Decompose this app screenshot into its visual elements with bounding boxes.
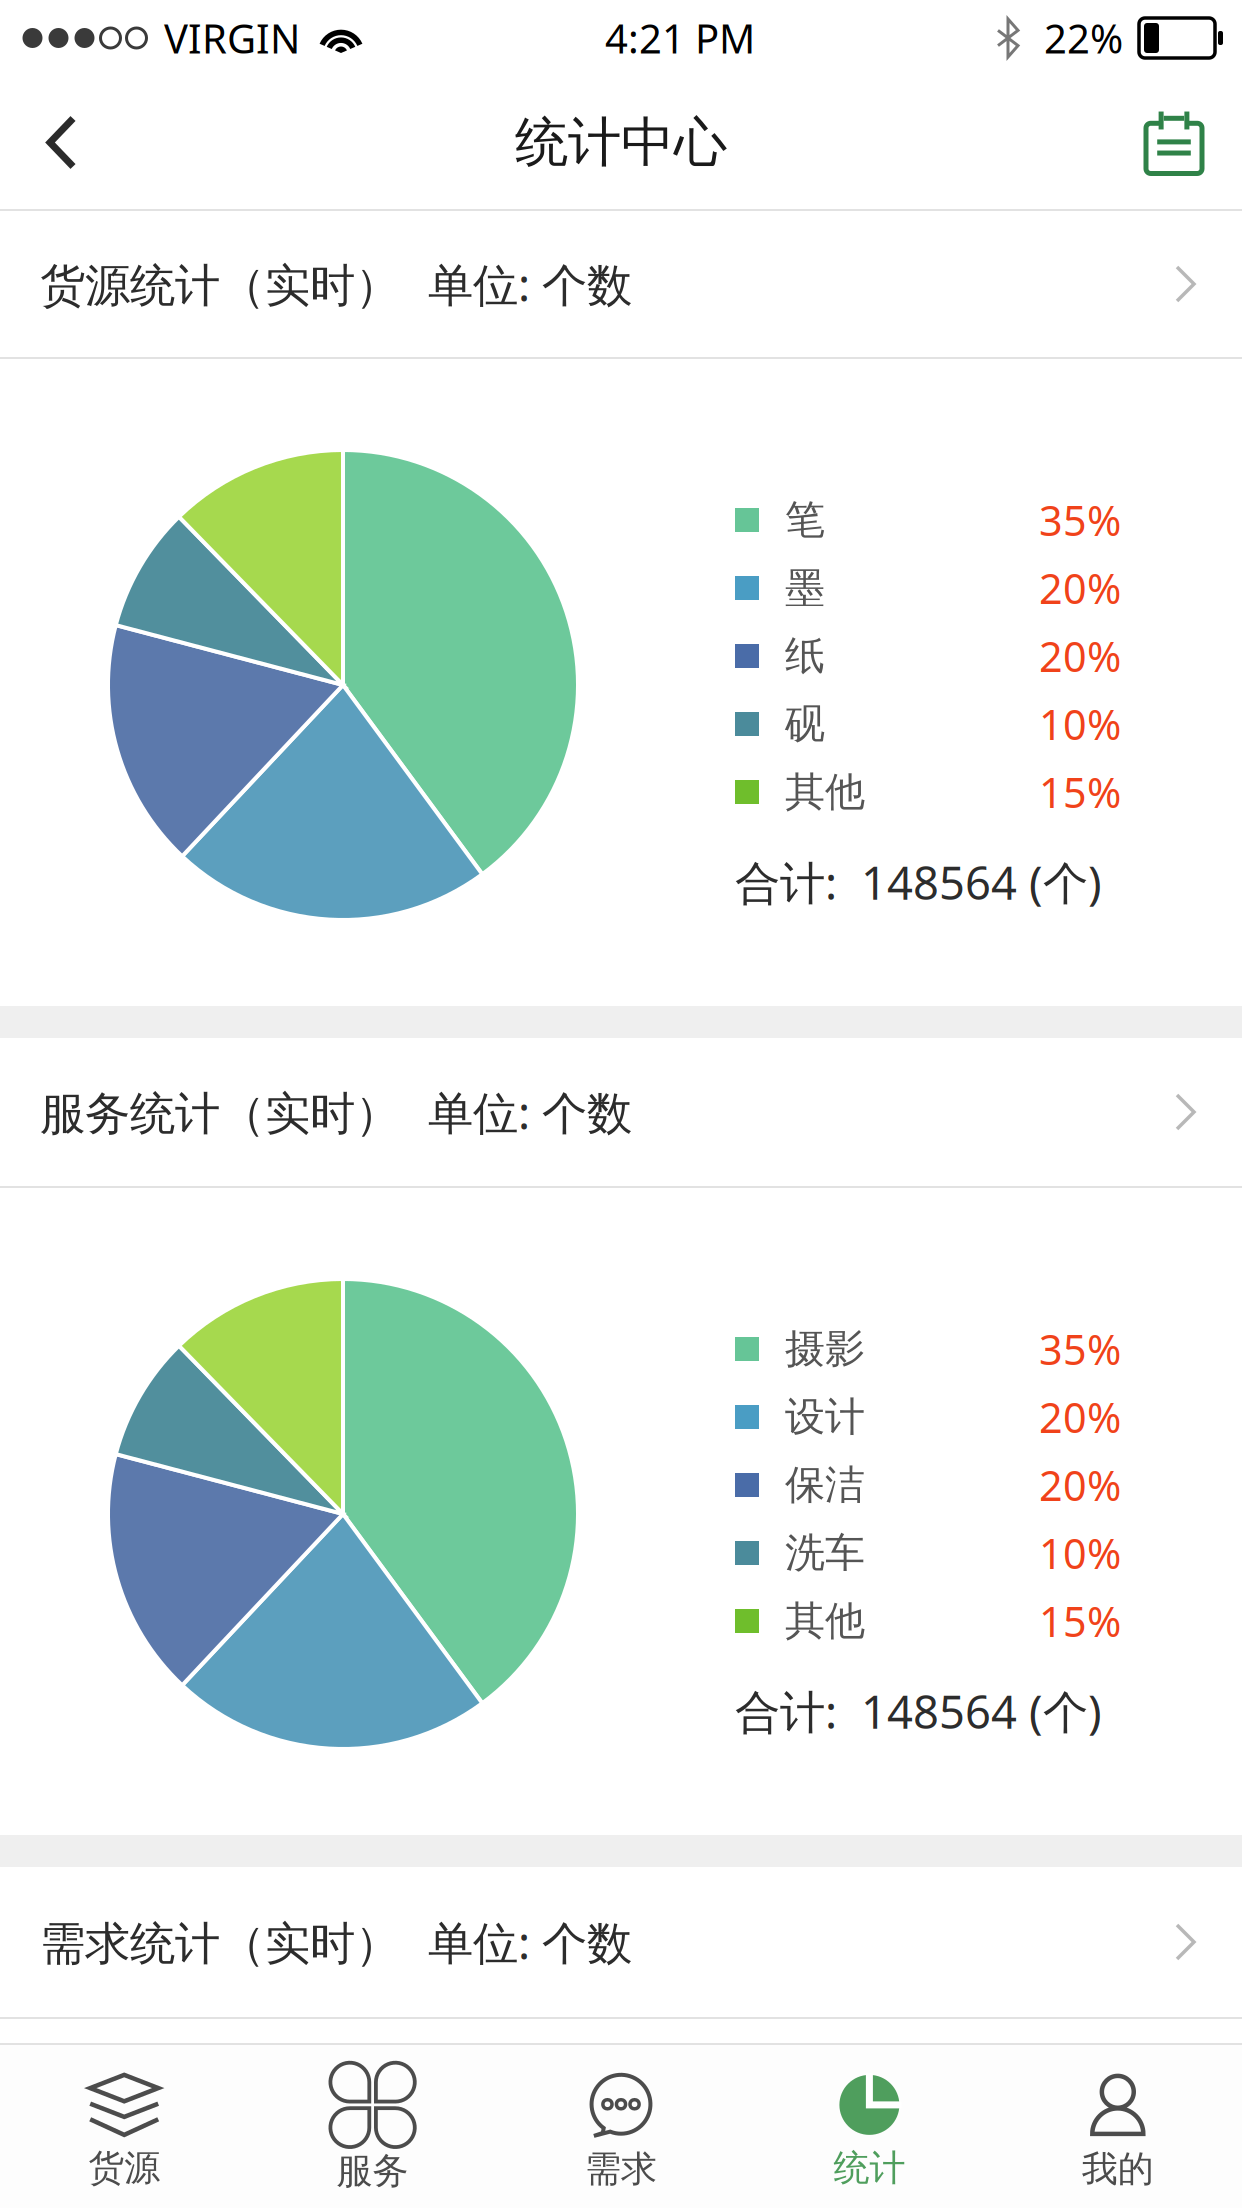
staticText: 35%	[1039, 493, 1121, 547]
staticText: 20%	[1039, 1390, 1121, 1444]
staticText: 22%	[1044, 11, 1123, 64]
staticText: 其他	[785, 767, 865, 816]
button[interactable]: 需求统计（实时） 单位: 个数	[0, 1867, 1242, 2017]
staticText: 我的	[1082, 2147, 1154, 2191]
staticText: 20%	[1039, 561, 1121, 615]
staticText: 其他	[785, 1596, 865, 1645]
button[interactable]: 我的	[994, 2062, 1242, 2191]
staticText: 统计中心	[515, 110, 727, 175]
staticText: 货源统计（实时） 单位: 个数	[40, 254, 632, 314]
staticText: 货源	[88, 2146, 160, 2190]
staticText: 35%	[1039, 1322, 1121, 1376]
button[interactable]: 需求	[497, 2062, 745, 2191]
button[interactable]: Back	[0, 86, 125, 198]
staticText: 摄影	[785, 1324, 865, 1373]
button[interactable]: 货源	[0, 2063, 248, 2190]
button[interactable]: 统计	[745, 2063, 994, 2190]
staticText: 洗车	[785, 1528, 865, 1577]
staticText: 20%	[1039, 1458, 1121, 1512]
staticText: 合计: 148564 (个)	[735, 852, 1102, 912]
staticText: 笔	[785, 495, 825, 544]
staticText: 统计	[833, 2146, 905, 2190]
staticText: 15%	[1039, 765, 1121, 819]
staticText: 墨	[785, 563, 825, 612]
button[interactable]: 服务	[248, 2060, 497, 2193]
staticText: 需求统计（实时） 单位: 个数	[40, 1912, 632, 1972]
staticText: 合计: 148564 (个)	[735, 1681, 1102, 1741]
staticText: 10%	[1039, 697, 1121, 751]
staticText: 15%	[1039, 1594, 1121, 1648]
staticText: 砚	[785, 699, 825, 748]
staticText: VIRGIN	[164, 11, 300, 64]
button[interactable]: 货源统计（实时） 单位: 个数	[0, 211, 1242, 357]
staticText: 服务	[337, 2149, 409, 2193]
staticText: 4:21 PM	[605, 11, 755, 64]
staticText: 设计	[785, 1392, 865, 1441]
staticText: 服务统计（实时） 单位: 个数	[40, 1082, 632, 1142]
staticText: 纸	[785, 631, 825, 680]
staticText: 20%	[1039, 629, 1121, 683]
button[interactable]: 服务统计（实时） 单位: 个数	[0, 1038, 1242, 1186]
button[interactable]: Records	[1106, 83, 1242, 201]
staticText: 需求	[585, 2147, 657, 2191]
staticText: 保洁	[785, 1460, 865, 1509]
staticText: 10%	[1039, 1526, 1121, 1580]
